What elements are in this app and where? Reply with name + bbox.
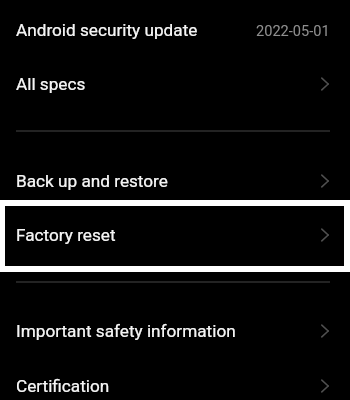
other: Open Important safety information xyxy=(320,323,330,339)
other: Open All specs xyxy=(320,76,330,92)
staticText: Back up and restore xyxy=(16,171,168,191)
button[interactable]: Factory reset xyxy=(0,208,350,262)
button[interactable]: Android security update xyxy=(0,3,350,57)
other: Open Back up and restore xyxy=(320,173,330,189)
button[interactable]: Important safety information xyxy=(0,304,350,358)
staticText: 2022-05-01 xyxy=(256,22,330,39)
other: Open Factory reset xyxy=(320,227,330,243)
staticText: Certification xyxy=(16,376,110,396)
button[interactable]: Back up and restore xyxy=(0,154,350,208)
button[interactable]: Certification xyxy=(0,359,350,400)
staticText: Important safety information xyxy=(16,321,236,341)
staticText: Android security update xyxy=(16,20,198,40)
button[interactable]: All specs xyxy=(0,57,350,111)
staticText: All specs xyxy=(16,74,86,94)
other: Open Certification xyxy=(320,378,330,394)
staticText: Factory reset xyxy=(16,225,116,245)
